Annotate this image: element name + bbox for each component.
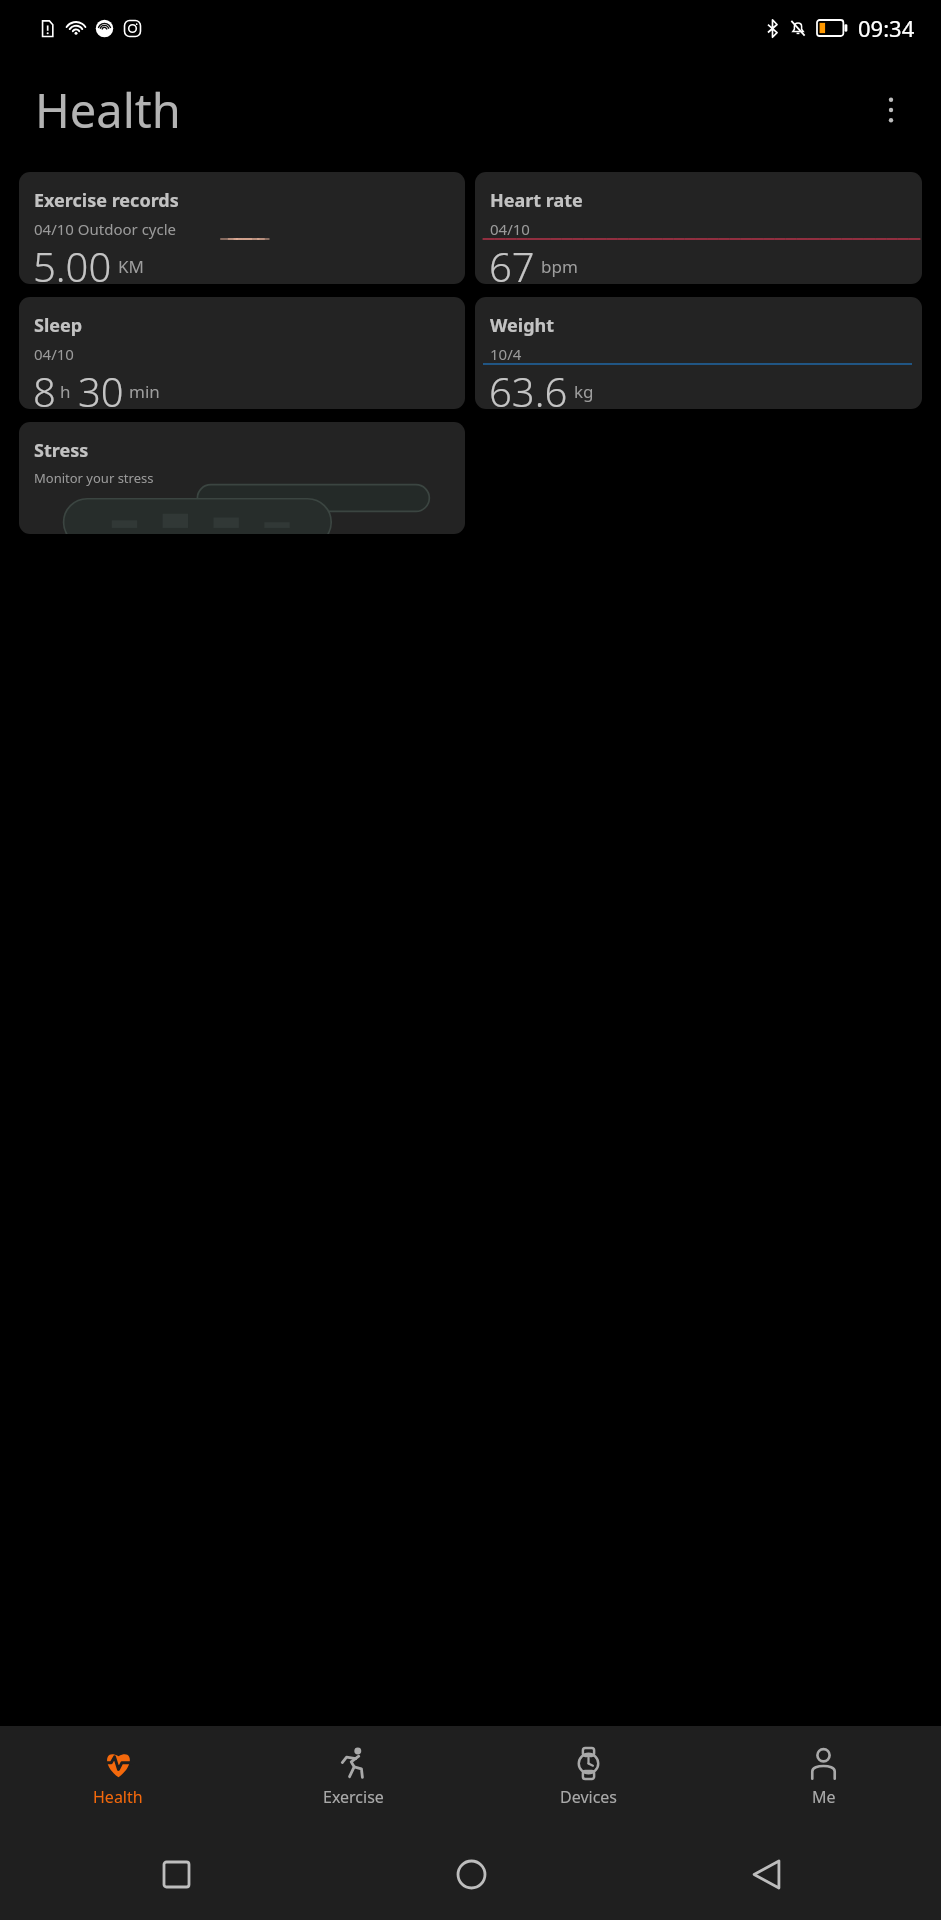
button[interactable]: Stress: [19, 422, 465, 534]
staticText: bpm: [541, 255, 578, 278]
staticText: 04/10: [34, 344, 74, 364]
staticText: Monitor your stress: [34, 469, 154, 487]
staticText: 5.00: [33, 239, 112, 284]
button[interactable]: Devices: [471, 1726, 706, 1828]
staticText: KM: [118, 255, 144, 278]
staticText: Heart rate: [490, 188, 583, 213]
staticText: Devices: [560, 1786, 618, 1808]
button[interactable]: Exercise records: [19, 172, 465, 284]
button[interactable]: Home: [440, 1843, 502, 1905]
button[interactable]: Recent apps: [145, 1843, 207, 1905]
button[interactable]: Heart rate: [475, 172, 922, 284]
staticText: 10/4: [490, 344, 522, 364]
staticText: 09:34: [858, 13, 915, 43]
staticText: 67: [489, 239, 535, 284]
staticText: Exercise records: [34, 188, 179, 213]
button[interactable]: Weight: [475, 297, 922, 409]
staticText: Health: [35, 78, 181, 142]
staticText: 04/10: [490, 219, 530, 239]
staticText: Sleep: [34, 313, 83, 338]
staticText: Weight: [490, 313, 555, 338]
button[interactable]: Exercise: [236, 1726, 471, 1828]
staticText: 04/10 Outdoor cycle: [34, 219, 177, 239]
button[interactable]: Sleep: [19, 297, 465, 409]
staticText: min: [129, 380, 160, 403]
staticText: h: [60, 380, 71, 403]
staticText: 63.6: [489, 364, 568, 409]
button[interactable]: Me: [706, 1726, 941, 1828]
button[interactable]: Health: [0, 1726, 236, 1828]
button[interactable]: Back: [735, 1843, 797, 1905]
staticText: 8: [33, 364, 56, 409]
staticText: 30: [78, 364, 124, 409]
staticText: Health: [93, 1786, 143, 1808]
button[interactable]: More options: [861, 80, 921, 140]
staticText: kg: [574, 380, 594, 403]
staticText: Stress: [34, 438, 89, 463]
staticText: Me: [812, 1786, 836, 1808]
staticText: Exercise: [323, 1786, 384, 1808]
